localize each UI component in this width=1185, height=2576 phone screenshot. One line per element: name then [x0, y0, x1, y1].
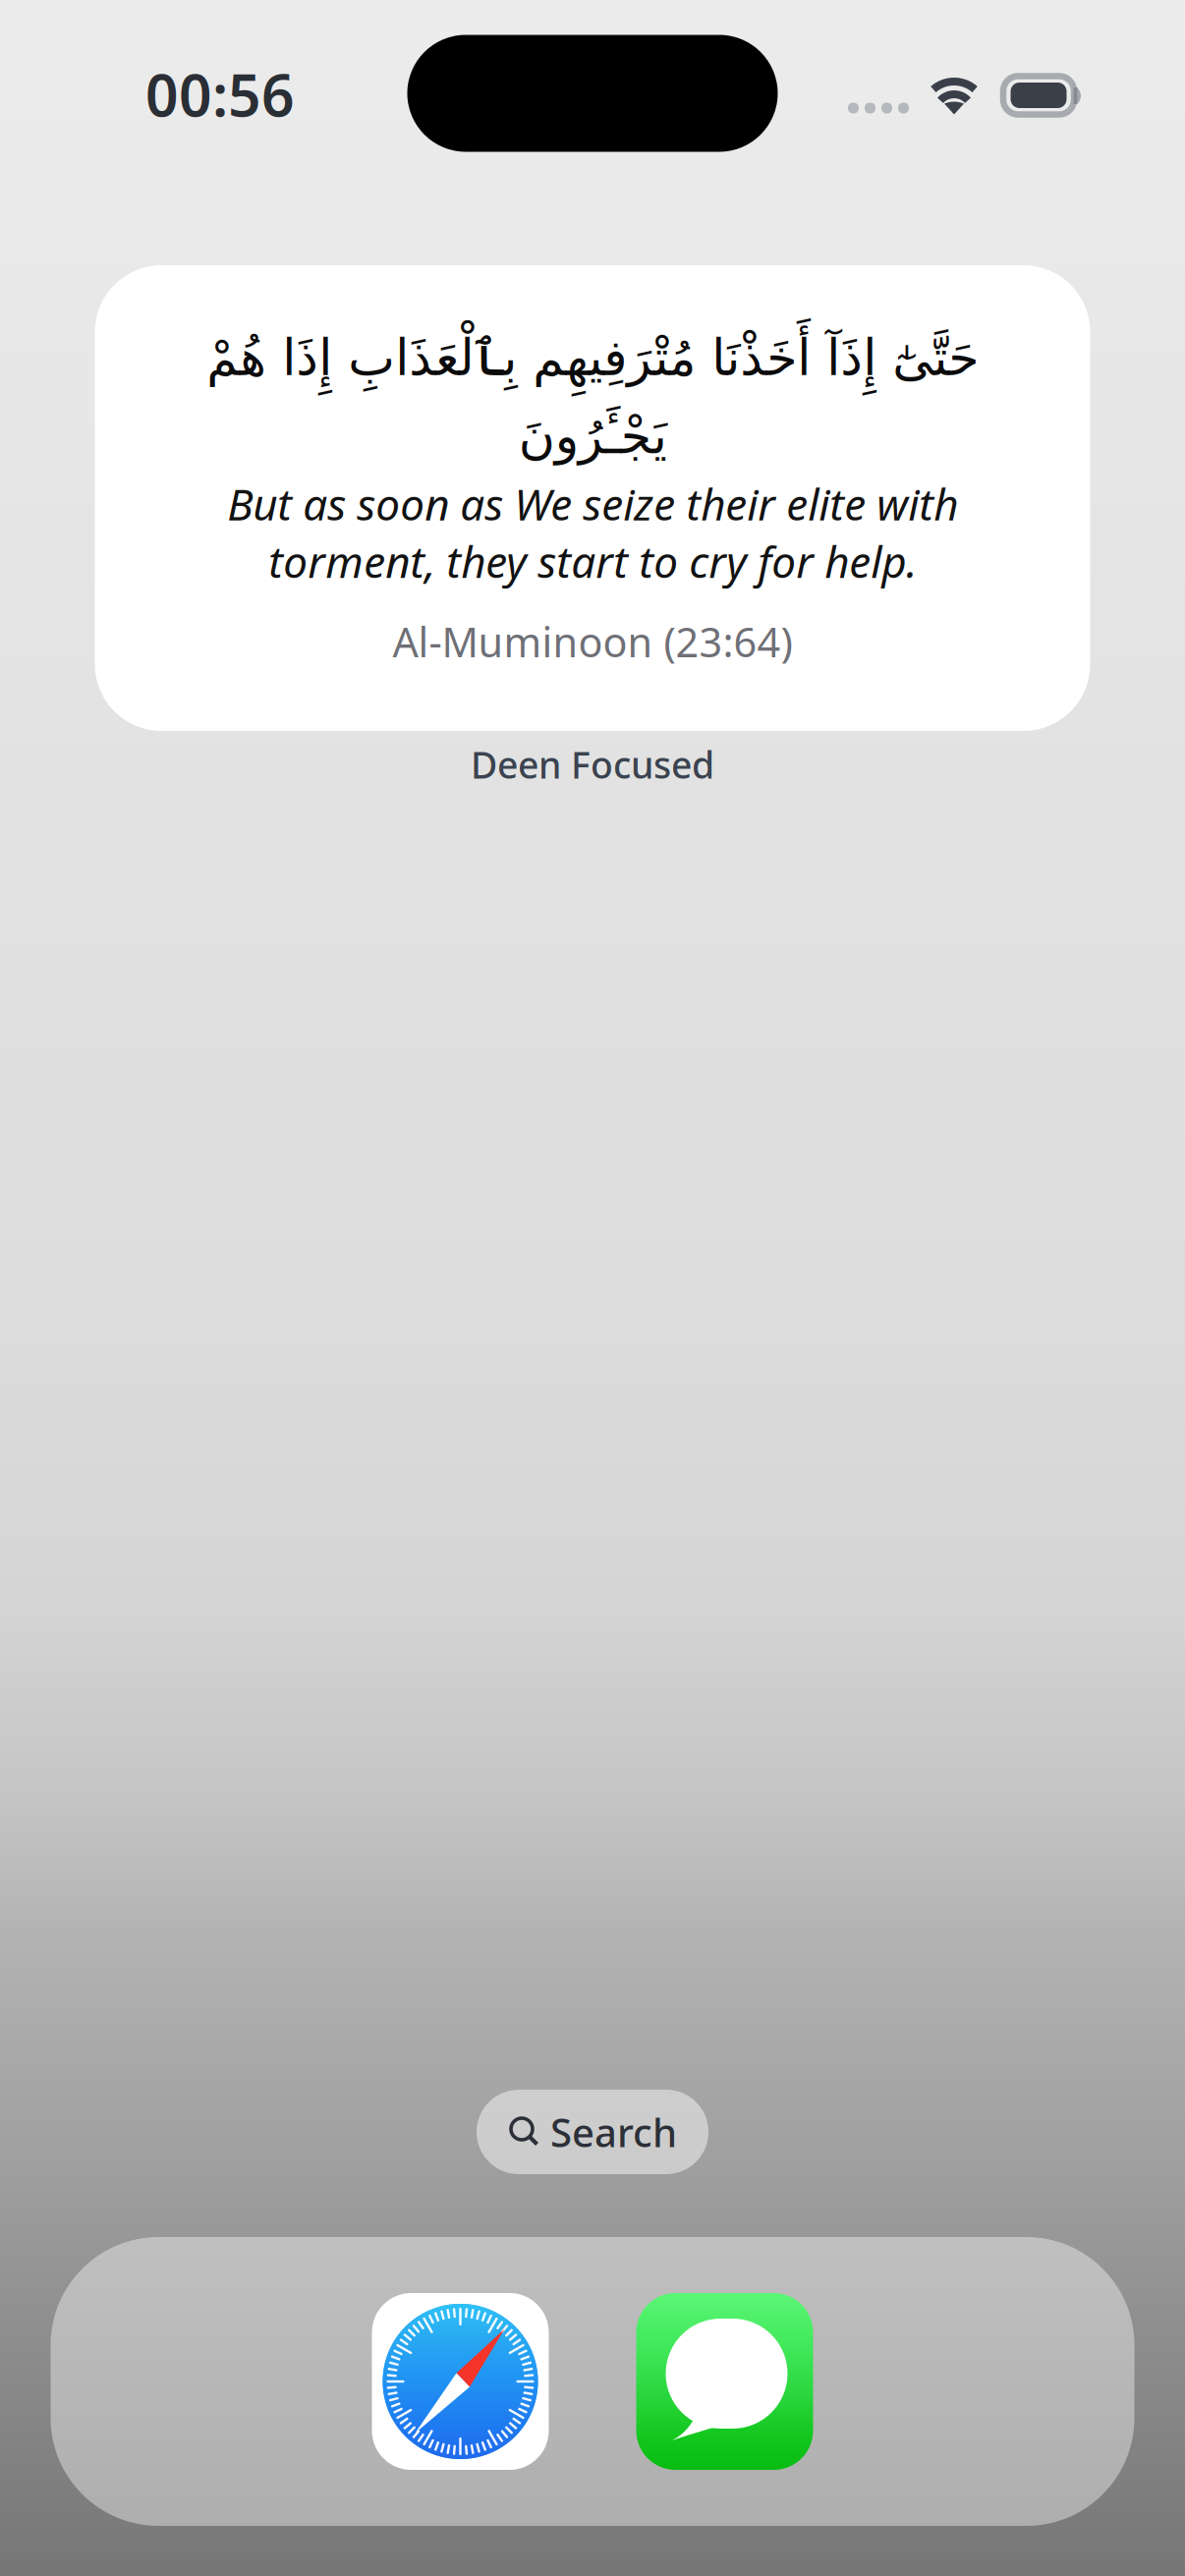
- button[interactable]: حَتَّىٰٓ إِذَآ أَخَذْنَا مُتْرَفِيهِم بِ…: [95, 265, 1090, 731]
- staticText: Search: [550, 2106, 677, 2158]
- staticText: But as soon as We seize their elite with…: [227, 475, 958, 590]
- button[interactable]: Search: [477, 2090, 708, 2174]
- button[interactable]: Safari: [372, 2293, 549, 2470]
- staticText: Deen Focused: [471, 740, 714, 789]
- button[interactable]: Messages: [636, 2293, 813, 2470]
- staticText: 00:56: [145, 56, 295, 133]
- staticText: حَتَّىٰٓ إِذَآ أَخَذْنَا مُتْرَفِيهِم بِ…: [206, 330, 979, 464]
- staticText: Al-Muminoon (23:64): [393, 615, 792, 669]
